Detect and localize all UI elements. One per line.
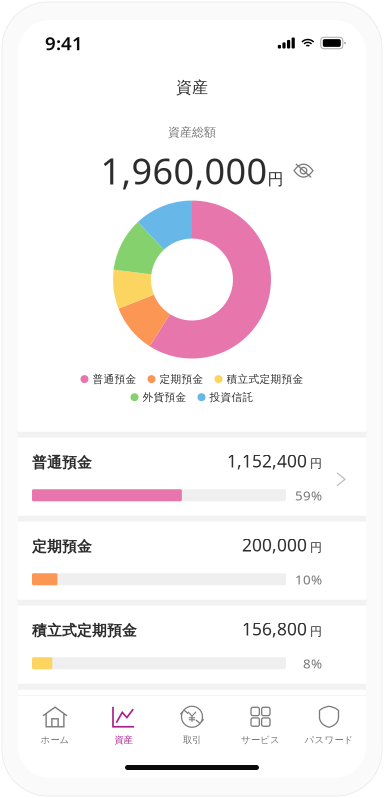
staticText: 200,000 <box>242 533 307 556</box>
staticText: 外貨預金 <box>142 391 186 404</box>
button[interactable]: ホーム <box>21 696 89 756</box>
button[interactable]: 金額の表示を切り替え <box>294 156 330 186</box>
staticText: 資産 <box>176 78 208 97</box>
staticText: 資産総額 <box>168 125 216 140</box>
staticText: 円 <box>267 169 283 189</box>
staticText: 定期預金 <box>32 538 92 556</box>
button[interactable]: サービス <box>226 696 294 756</box>
staticText: 普通預金 <box>92 372 136 386</box>
staticText: 定期預金 <box>159 372 203 386</box>
staticText: ホーム <box>40 734 69 746</box>
button[interactable]: 取引 <box>158 696 226 756</box>
staticText: 8% <box>303 654 322 672</box>
button[interactable]: 定期預金 <box>18 522 366 600</box>
staticText: パスワード <box>304 734 353 746</box>
button[interactable]: 普通預金 <box>18 438 366 516</box>
staticText: サービス <box>241 734 280 746</box>
staticText: 156,800 <box>242 617 307 640</box>
staticText: 10% <box>295 570 322 588</box>
staticText: 1,960,000 <box>100 147 267 194</box>
staticText: 59% <box>295 486 322 504</box>
staticText: 円 <box>310 624 322 639</box>
button[interactable]: 積立式定期預金 <box>18 606 366 684</box>
staticText: 投資信託 <box>209 391 253 404</box>
staticText: 普通預金 <box>32 454 92 472</box>
staticText: 1,152,400 <box>227 449 307 472</box>
staticText: 取引 <box>183 734 201 746</box>
button[interactable]: 資産 <box>89 696 157 756</box>
staticText: 積立式定期預金 <box>226 372 303 386</box>
staticText: 資産 <box>114 734 132 746</box>
staticText: 円 <box>310 456 322 471</box>
button[interactable]: パスワード <box>295 696 363 756</box>
staticText: 積立式定期預金 <box>32 622 137 640</box>
staticText: 円 <box>310 540 322 555</box>
staticText: 9:41 <box>45 31 83 55</box>
